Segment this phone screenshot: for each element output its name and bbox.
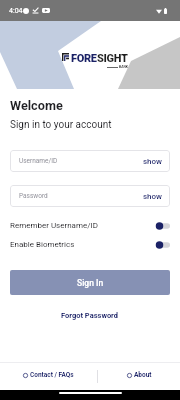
- staticText: Welcome: [10, 98, 63, 113]
- staticText: Password: [19, 192, 48, 200]
- button[interactable]: Enable Biometrics: [10, 239, 170, 250]
- button[interactable]: show: [135, 153, 170, 170]
- staticText: BANK: [119, 65, 128, 69]
- button[interactable]: Forgot Password: [55, 308, 125, 323]
- staticText: Sign in to your account: [10, 119, 112, 131]
- button[interactable]: Password: [10, 185, 170, 207]
- button[interactable]: show: [135, 188, 170, 205]
- staticText: Sign In: [77, 278, 104, 288]
- other: Remember Username/ID: [155, 222, 170, 230]
- staticText: Remember Username/ID: [10, 221, 98, 230]
- button[interactable]: About: [98, 363, 180, 390]
- staticText: Contact / FAQs: [30, 371, 74, 379]
- staticText: About: [134, 371, 152, 379]
- button[interactable]: Username/ID: [10, 150, 170, 172]
- button[interactable]: Sign In: [10, 270, 170, 295]
- other: Enable Biometrics: [155, 241, 170, 249]
- staticText: FORE: [71, 52, 97, 65]
- staticText: SIGHT: [97, 52, 128, 65]
- button[interactable]: Contact / FAQs: [0, 363, 97, 390]
- button[interactable]: Remember Username/ID: [10, 220, 170, 231]
- staticText: Enable Biometrics: [10, 240, 75, 249]
- staticText: 4:04: [9, 7, 23, 15]
- staticText: Username/ID: [19, 157, 58, 165]
